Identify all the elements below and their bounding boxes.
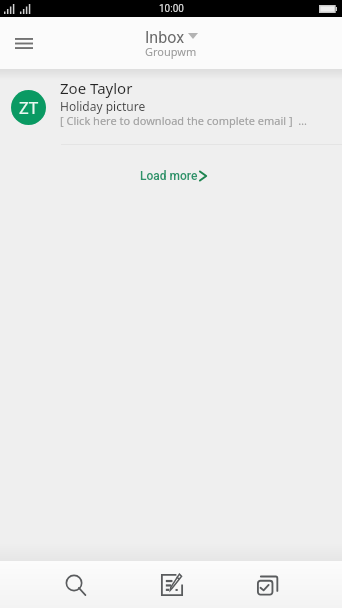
staticText: [ Click here to download the complete em… [60,113,308,128]
button[interactable]: Menu [3,22,45,64]
button[interactable]: Compose new message [124,561,219,608]
staticText: Inbox [145,28,185,47]
staticText: Load more [140,169,198,183]
button[interactable]: Select messages [219,561,314,608]
staticText: Zoe Taylor [60,78,133,98]
staticText: 10:00 [159,3,184,15]
button[interactable]: Search [28,561,124,608]
staticText: ZT [19,96,39,119]
staticText: Holiday picture [60,98,146,114]
button[interactable]: Load more [126,161,221,191]
staticText: Groupwm [145,44,197,59]
button[interactable]: ZT [0,69,342,145]
